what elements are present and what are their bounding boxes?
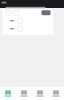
button[interactable]: Tab [48,87,64,100]
button[interactable]: Tab [32,87,48,100]
button[interactable]: Home [0,87,16,100]
button[interactable]: Tab [16,87,32,100]
